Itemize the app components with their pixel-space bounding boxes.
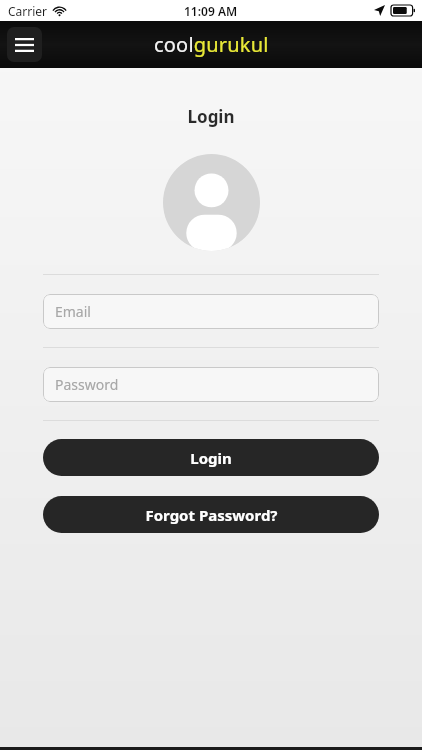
staticText: Carrier [8, 3, 48, 19]
staticText: Password [55, 375, 119, 394]
staticText: Email [55, 302, 91, 321]
staticText: Forgot Password? [145, 505, 278, 525]
button[interactable]: Email [43, 294, 379, 329]
staticText: 11:09 AM [184, 3, 238, 19]
button[interactable]: Password [43, 367, 379, 402]
button[interactable]: Forgot Password? [43, 496, 379, 533]
staticText: Login [187, 105, 235, 128]
staticText: Login [190, 448, 232, 468]
button[interactable]: Menu [7, 27, 42, 62]
button[interactable]: Login [43, 439, 379, 476]
staticText: coolgurukul [154, 31, 269, 58]
